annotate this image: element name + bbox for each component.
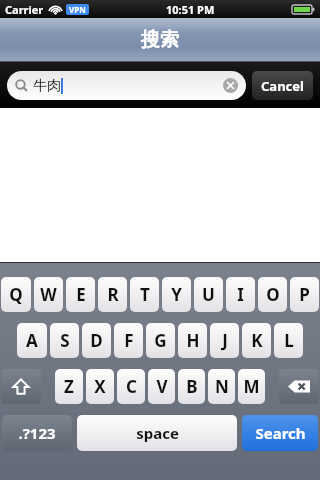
staticText: A [26,329,38,352]
button[interactable]: L [274,323,303,358]
staticText: P [299,283,310,306]
button[interactable]: W [34,277,63,312]
button[interactable]: T [130,277,159,312]
staticText: space [136,423,179,443]
button[interactable]: C [117,369,145,404]
staticText: T [140,283,150,306]
staticText: Y [171,283,182,306]
button[interactable]: Z [55,369,83,404]
staticText: D [90,329,103,352]
button[interactable]: F [114,323,143,358]
staticText: Carrier [5,2,44,17]
staticText: VPN [69,4,86,15]
staticText: 牛肉 [33,77,61,95]
button[interactable]: J [210,323,239,358]
button[interactable]: U [194,277,223,312]
staticText: R [107,283,119,306]
button[interactable]: 牛肉 [7,71,246,100]
other: Backspace [288,379,310,394]
button[interactable]: Key [279,369,319,404]
button[interactable]: Key [1,369,41,404]
staticText: K [251,329,263,352]
staticText: U [202,283,215,306]
button[interactable]: K [242,323,271,358]
staticText: Search [255,423,306,443]
staticText: G [154,329,167,352]
staticText: X [94,375,106,398]
button[interactable]: Y [162,277,191,312]
staticText: J [222,329,228,352]
button[interactable]: Search [242,415,318,451]
button[interactable]: V [148,369,175,404]
staticText: 搜索 [141,28,179,52]
staticText: V [156,375,168,398]
button[interactable]: .?123 [2,415,72,451]
button[interactable]: N [208,369,235,404]
staticText: S [60,329,70,352]
button[interactable]: Clear text [223,78,238,93]
staticText: W [40,283,57,306]
button[interactable]: X [86,369,114,404]
staticText: 10:51 PM [166,2,215,17]
button[interactable]: P [290,277,319,312]
button[interactable]: M [238,369,265,404]
button[interactable]: G [146,323,175,358]
staticText: Cancel [261,77,304,95]
staticText: H [186,329,200,352]
button[interactable]: D [82,323,111,358]
staticText: F [124,329,134,352]
button[interactable]: E [66,277,95,312]
staticText: I [237,283,244,306]
other: Shift [11,377,31,397]
staticText: .?123 [18,423,56,443]
button[interactable]: space [77,415,237,451]
staticText: C [126,375,137,398]
staticText: E [76,283,86,306]
button[interactable]: Q [1,277,31,312]
button[interactable]: Cancel [252,71,313,100]
button[interactable]: O [258,277,287,312]
staticText: L [284,329,294,352]
button[interactable]: R [98,277,127,312]
staticText: O [266,283,280,306]
staticText: B [186,375,198,398]
staticText: M [243,375,260,398]
button[interactable]: A [17,323,47,358]
button[interactable]: H [178,323,207,358]
staticText: N [215,375,229,398]
button[interactable]: I [226,277,255,312]
staticText: Q [9,283,23,306]
button[interactable]: B [178,369,205,404]
button[interactable]: S [50,323,79,358]
staticText: Z [64,375,74,398]
